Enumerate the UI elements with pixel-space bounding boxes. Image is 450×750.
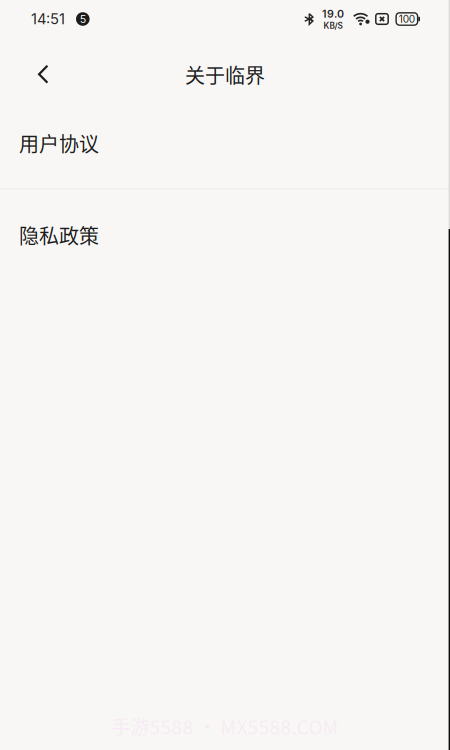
staticText: 19.0 <box>322 7 344 20</box>
staticText: 用户协议 <box>19 128 99 157</box>
staticText: 5 <box>80 12 86 25</box>
staticText: 14:51 <box>31 10 65 28</box>
staticText: 关于临界 <box>185 60 265 89</box>
staticText: 手游5588 · MX5588.COM <box>111 712 338 740</box>
button[interactable]: 返回 <box>21 53 65 96</box>
button[interactable]: 用户协议 <box>0 97 450 188</box>
staticText: KB/S <box>323 21 342 31</box>
staticText: 隐私政策 <box>19 220 99 249</box>
staticText: 100 <box>399 13 415 25</box>
button[interactable]: 隐私政策 <box>0 189 450 280</box>
